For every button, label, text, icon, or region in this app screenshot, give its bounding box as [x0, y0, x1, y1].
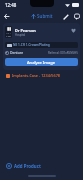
staticText: Denture [10, 50, 24, 55]
button[interactable]: Analyze Image [5, 58, 78, 66]
staticText: NE 1 [6, 32, 11, 35]
staticText: Add Product [14, 163, 41, 169]
button[interactable]: NE 1-CR 1-Crown/Plating [5, 42, 78, 48]
staticText: Implants-Case - 1234/5678 [12, 73, 61, 78]
button[interactable]: NE 1 [3, 23, 80, 70]
staticText: Analyze Image [27, 60, 56, 65]
staticText: Submit [37, 13, 53, 19]
staticText: Hospital [15, 33, 26, 37]
button[interactable]: Edit [60, 11, 71, 22]
staticText: 1-CR [6, 35, 11, 38]
staticText: NE 1-CR 1-Crown/Plating [13, 43, 50, 47]
button[interactable]: Submit [30, 11, 54, 21]
button[interactable]: Add Product [6, 163, 41, 169]
staticText: 12:48 [5, 2, 17, 8]
staticText: Referral: 001xR5N5H5 [48, 51, 78, 55]
button[interactable]: Back [1, 11, 12, 22]
button[interactable]: Implants-Case - 1234/5678 [6, 73, 61, 78]
button[interactable]: Favorite [69, 26, 78, 35]
button[interactable]: Messages [71, 11, 82, 22]
staticText: Dr Pearson [15, 28, 36, 33]
